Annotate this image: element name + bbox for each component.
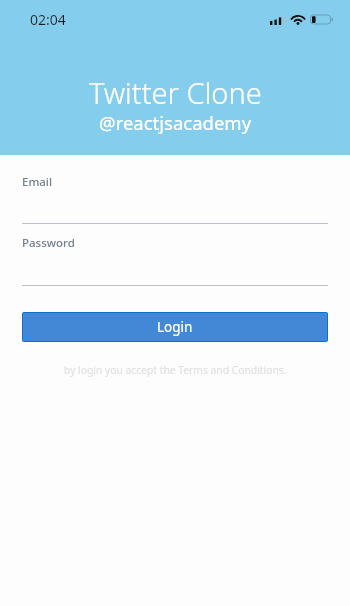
staticText: @reactjsacademy <box>99 110 252 135</box>
button[interactable]: by login you accept the Terms and Condit… <box>22 363 328 377</box>
staticText: by login you accept the Terms and Condit… <box>64 363 287 377</box>
staticText: Login <box>157 318 193 336</box>
other: Wi-Fi connected <box>291 14 305 25</box>
other: Battery level <box>310 14 333 25</box>
button[interactable]: Password <box>22 235 328 286</box>
staticText: Password <box>22 235 75 251</box>
other: Cellular signal strength <box>270 14 286 25</box>
button[interactable]: Email <box>22 174 328 224</box>
button[interactable]: Login <box>22 312 328 342</box>
staticText: Twitter Clone <box>89 73 262 112</box>
staticText: 02:04 <box>30 10 66 29</box>
staticText: Email <box>22 174 53 190</box>
